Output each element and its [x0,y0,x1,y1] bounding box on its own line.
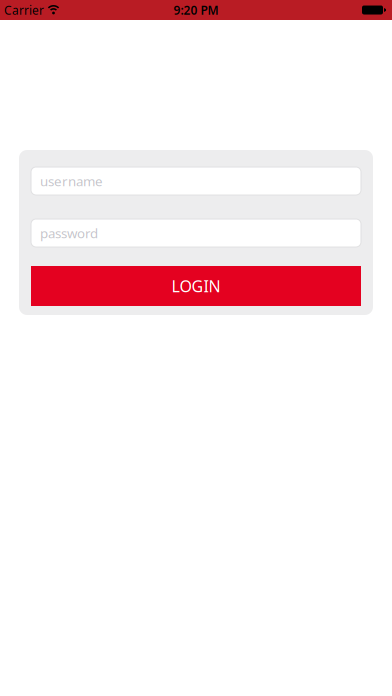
button[interactable]: LOGIN [31,266,361,306]
staticText: 9:20 PM [173,2,218,18]
staticText: LOGIN [171,275,220,297]
staticText: password [40,224,98,242]
staticText: Carrier [4,2,44,18]
button[interactable]: password [31,219,361,247]
staticText: username [40,172,103,190]
button[interactable]: username [31,167,361,195]
